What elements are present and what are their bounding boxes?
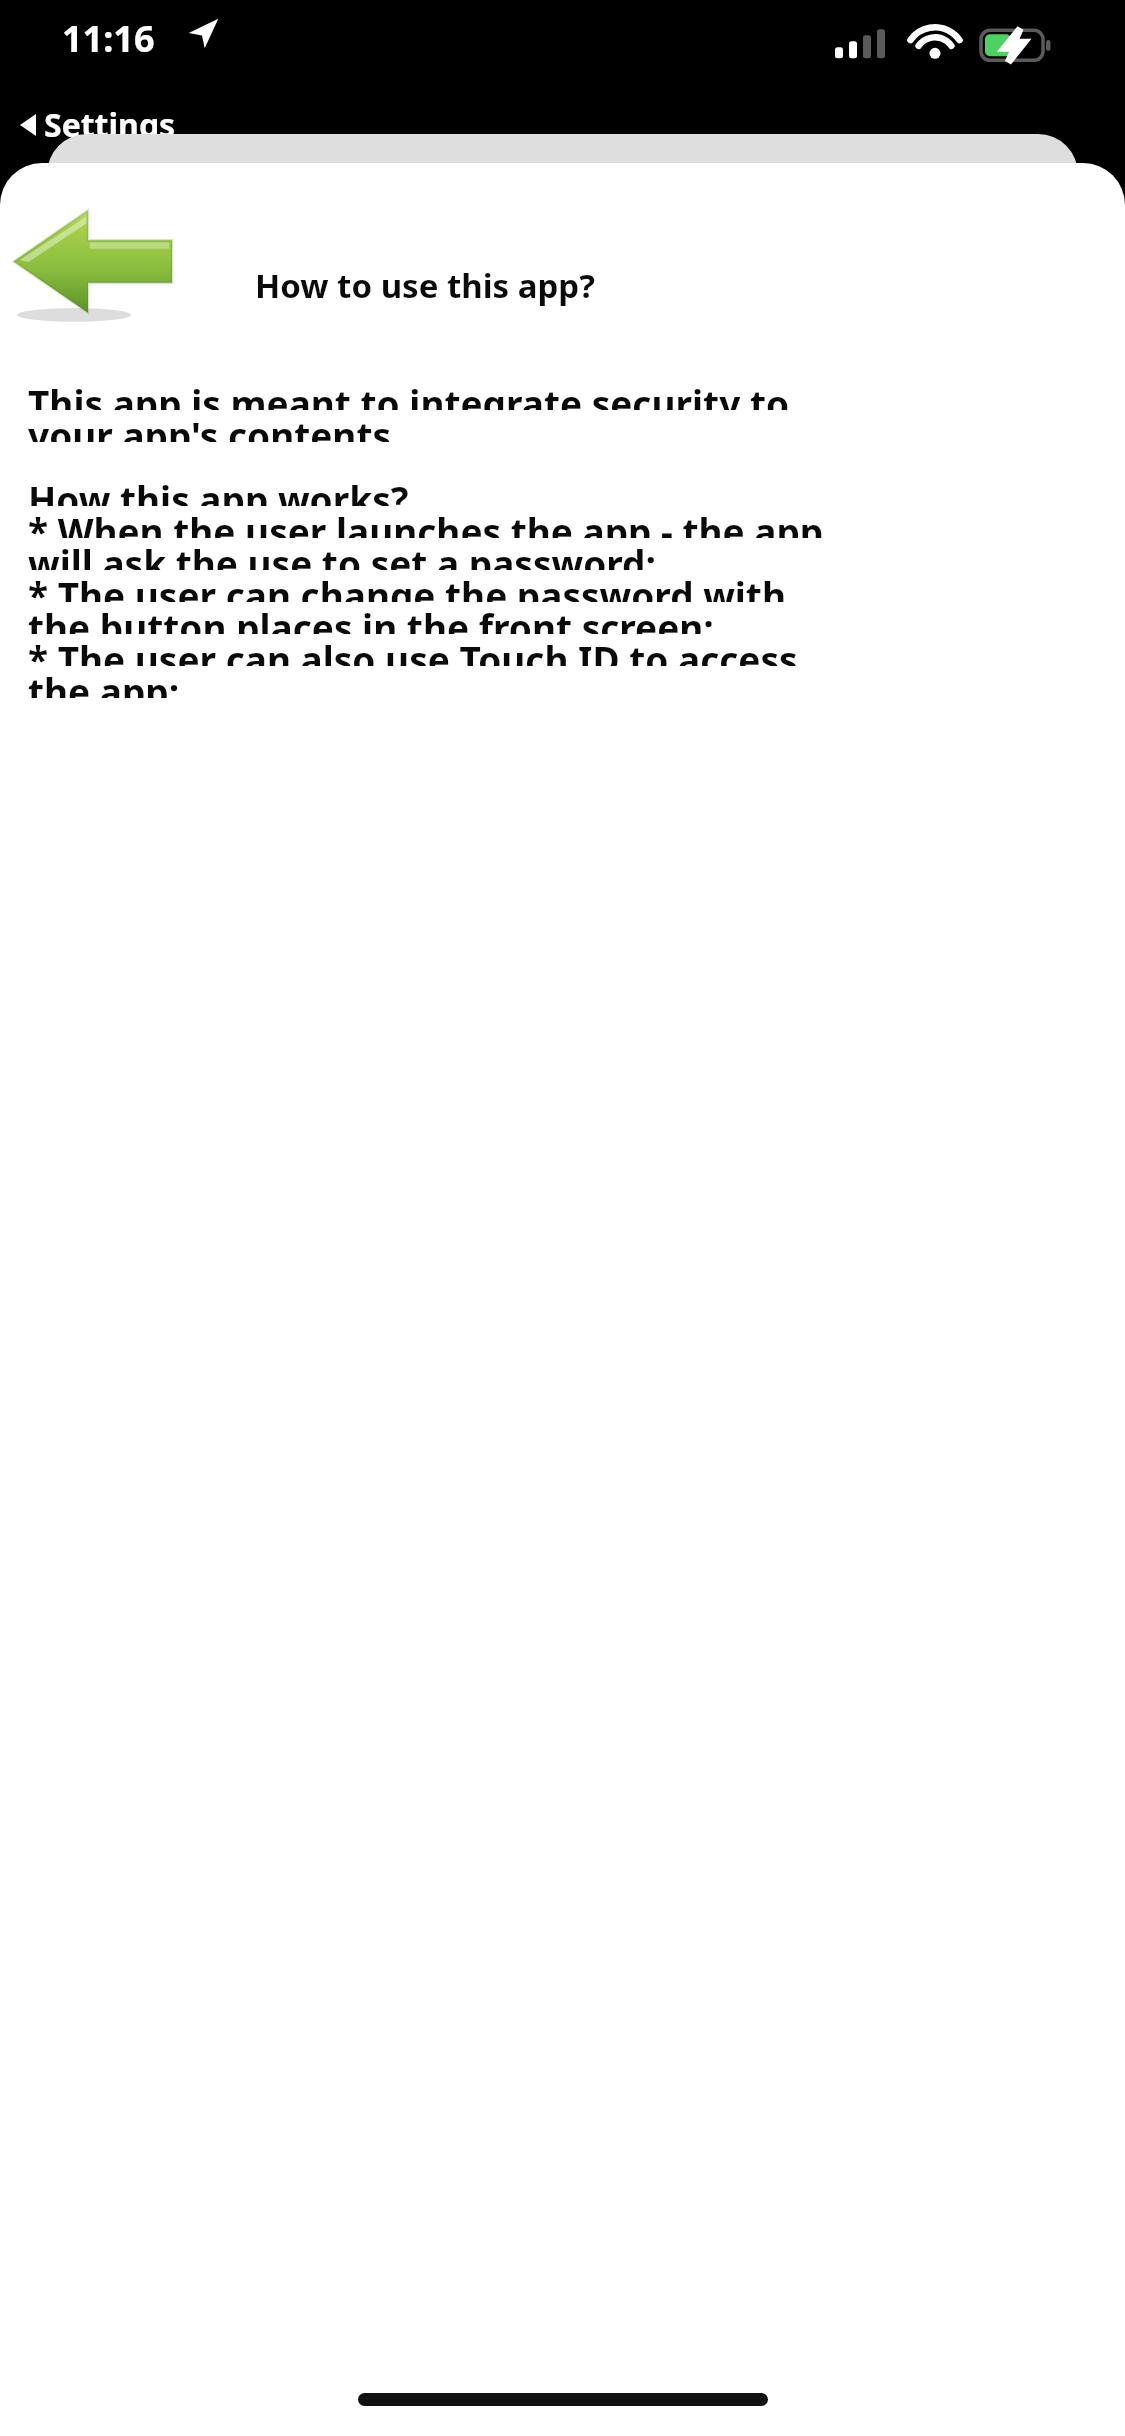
staticText: * When the user launches the app - the a… [28, 506, 824, 538]
staticText: 11:16 [62, 14, 155, 63]
button[interactable]: Back [4, 208, 179, 323]
staticText: Settings [44, 103, 176, 147]
staticText: How this app works? [28, 474, 409, 506]
staticText: * The user can also use Touch ID to acce… [28, 634, 798, 666]
staticText: will ask the use to set a password; [28, 538, 656, 570]
staticText: How to use this app? [200, 263, 650, 308]
staticText: the app; [28, 666, 180, 698]
button[interactable]: Settings [14, 100, 234, 150]
staticText: * The user can change the password with [28, 570, 786, 602]
staticText: your app's contents. [28, 410, 402, 442]
staticText: the button places in the front screen; [28, 602, 714, 634]
staticText: This app is meant to integrate security … [28, 378, 790, 410]
